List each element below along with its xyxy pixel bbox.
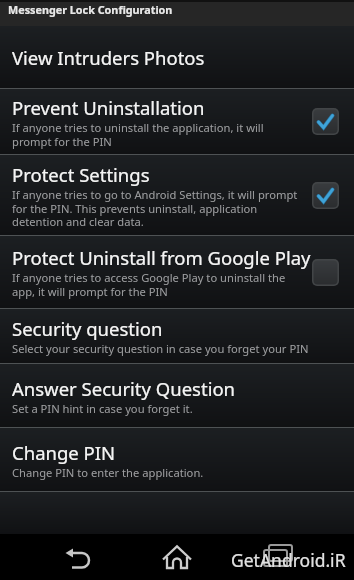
button[interactable] <box>155 537 199 577</box>
staticText: Change PIN to enter the application. <box>12 465 204 480</box>
button[interactable] <box>263 545 293 566</box>
staticText: View Intruders Photos <box>12 45 205 70</box>
staticText: GetAndroid.iR <box>231 548 346 572</box>
staticText: If anyone tries to go to Android Setting… <box>12 187 298 229</box>
staticText: Prevent Uninstallation <box>12 95 205 120</box>
staticText: Protect Settings <box>12 162 150 187</box>
staticText: Security question <box>12 316 163 341</box>
button[interactable]: Change PIN <box>0 428 354 491</box>
button[interactable]: Prevent Uninstallation <box>0 89 354 154</box>
button[interactable]: Security question <box>0 309 354 363</box>
button[interactable]: Messenger Lock Configuration <box>0 0 354 26</box>
staticText: Select your security question in case yo… <box>12 341 309 356</box>
button[interactable] <box>57 539 97 579</box>
button[interactable]: View Intruders Photos <box>0 26 354 88</box>
button[interactable] <box>312 259 339 286</box>
button[interactable]: Protect Uninstall from Google Play <box>0 236 354 308</box>
staticText: Change PIN <box>12 440 116 465</box>
staticText: Messenger Lock Configuration <box>8 2 173 17</box>
staticText: If anyone tries to uninstall the applica… <box>12 120 264 149</box>
button[interactable]: Protect Settings <box>0 155 354 235</box>
staticText: Set a PIN hint in case you forget it. <box>12 401 193 416</box>
staticText: Protect Uninstall from Google Play <box>12 245 311 270</box>
staticText: Answer Security Question <box>12 376 236 401</box>
staticText: If anyone tries to access Google Play to… <box>12 270 286 299</box>
button[interactable]: Answer Security Question <box>0 364 354 427</box>
button[interactable] <box>312 182 339 209</box>
button[interactable] <box>312 108 339 135</box>
